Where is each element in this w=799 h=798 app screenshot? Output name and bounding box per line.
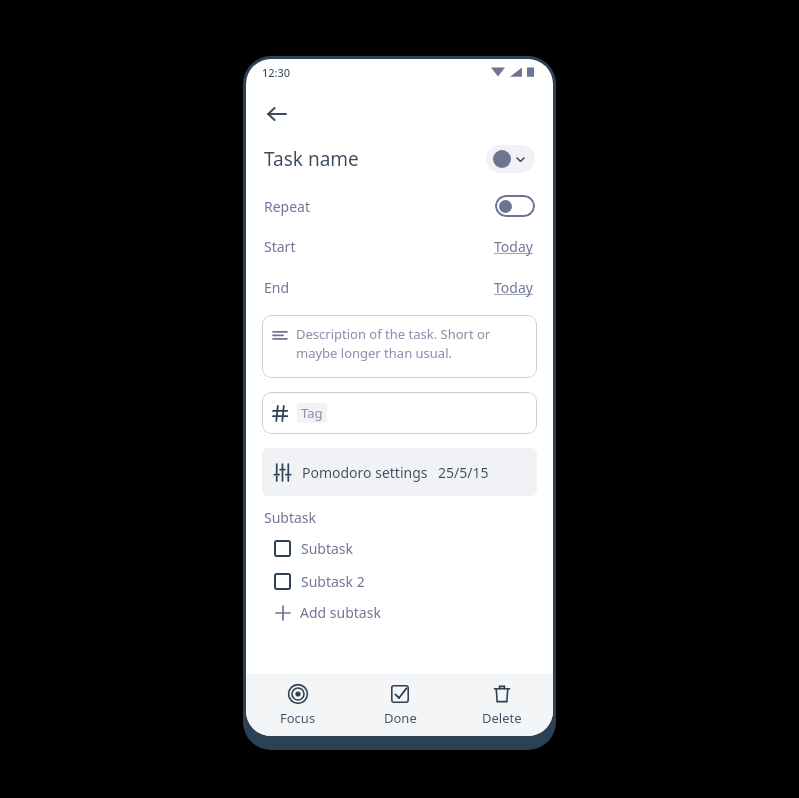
button[interactable]: Add subtask bbox=[246, 603, 553, 622]
button[interactable]: Pomodoro settings bbox=[262, 448, 537, 496]
button[interactable]: Select color bbox=[486, 145, 535, 173]
button[interactable]: Subtask 2 bbox=[246, 572, 553, 591]
staticText: Subtask bbox=[301, 539, 354, 558]
button[interactable]: Back bbox=[258, 95, 296, 133]
button[interactable]: Description of the task. Short or maybe … bbox=[262, 315, 537, 378]
button[interactable]: Repeat toggle bbox=[495, 195, 535, 217]
staticText: Tag bbox=[301, 404, 323, 422]
button[interactable]: Subtask bbox=[246, 539, 553, 558]
staticText: Pomodoro settings bbox=[302, 463, 428, 482]
staticText: Subtask bbox=[264, 508, 317, 527]
staticText: Start bbox=[264, 237, 296, 256]
button[interactable]: Tag bbox=[262, 392, 537, 434]
staticText: Focus bbox=[280, 709, 316, 727]
staticText: Add subtask bbox=[300, 603, 381, 622]
button[interactable]: Today bbox=[492, 276, 535, 299]
staticText: Description of the task. Short or maybe … bbox=[296, 325, 527, 362]
staticText: End bbox=[264, 278, 290, 297]
staticText: Today bbox=[494, 237, 533, 256]
staticText: Subtask 2 bbox=[301, 572, 365, 591]
button[interactable]: Focus bbox=[246, 674, 349, 736]
button[interactable]: Delete bbox=[451, 674, 553, 736]
staticText: Repeat bbox=[264, 197, 311, 216]
staticText: 12:30 bbox=[262, 65, 291, 80]
button[interactable]: Done bbox=[349, 674, 451, 736]
button[interactable]: Today bbox=[492, 235, 535, 258]
staticText: 25/5/15 bbox=[438, 463, 489, 482]
staticText: Today bbox=[494, 278, 533, 297]
staticText: Task name bbox=[264, 146, 359, 172]
staticText: Done bbox=[384, 709, 417, 727]
staticText: Delete bbox=[482, 709, 522, 727]
